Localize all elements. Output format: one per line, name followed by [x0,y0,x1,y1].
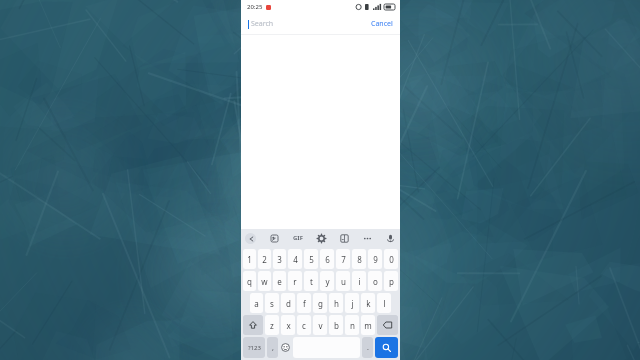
button[interactable]: 7 [336,249,350,269]
staticText: r [293,276,297,287]
button[interactable]: d [281,293,295,313]
staticText: 4 [293,254,298,265]
button[interactable]: f [297,293,311,313]
staticText: w [261,276,268,287]
button[interactable]: 9 [368,249,382,269]
button[interactable]: a [250,293,263,313]
button[interactable]: u [336,271,350,291]
staticText: d [286,298,291,309]
staticText: . [367,343,369,353]
staticText: v [318,320,323,331]
staticText: 1 [247,254,252,265]
staticText: h [334,298,339,309]
button[interactable]: v [313,315,327,335]
staticText: n [350,320,355,331]
button[interactable]: Emoji [280,337,291,358]
button[interactable]: o [368,271,382,291]
staticText: b [334,320,339,331]
staticText: 8 [357,254,362,265]
button[interactable]: q [243,271,256,291]
button[interactable]: 4 [288,249,302,269]
button[interactable]: Translate [339,233,350,244]
staticText: 7 [341,254,346,265]
button[interactable]: y [320,271,334,291]
staticText: 5 [309,254,314,265]
button[interactable]: j [345,293,359,313]
button[interactable]: s [265,293,279,313]
staticText: q [247,276,252,287]
button[interactable]: 2 [258,249,271,269]
staticText: f [303,298,306,309]
staticText: j [351,298,354,309]
button[interactable]: p [384,271,398,291]
staticText: u [341,276,346,287]
staticText: 20:25 [247,3,263,11]
staticText: 3 [277,254,282,265]
button[interactable]: . [362,337,373,358]
staticText: 0 [389,254,394,265]
button[interactable]: k [361,293,375,313]
button[interactable]: GIF [292,233,304,243]
button[interactable]: 3 [273,249,286,269]
staticText: o [373,276,378,287]
staticText: 9 [373,254,378,265]
button[interactable]: 5 [304,249,318,269]
staticText: l [383,298,386,309]
staticText: z [270,320,274,331]
staticText: c [302,320,306,331]
button[interactable]: m [361,315,375,335]
button[interactable]: z [265,315,279,335]
button[interactable]: 8 [352,249,366,269]
button[interactable]: 1 [243,249,256,269]
button[interactable]: g [313,293,327,313]
button[interactable]: More [362,233,373,244]
staticText: 6 [325,254,330,265]
staticText: m [364,320,372,331]
staticText: x [286,320,291,331]
button[interactable]: Sticker [269,233,280,244]
staticText: Cancel [371,19,393,29]
button[interactable]: Shift [243,315,263,335]
staticText: p [389,276,394,287]
button[interactable]: Back [245,233,256,244]
button[interactable]: l [377,293,391,313]
staticText: s [270,298,274,309]
staticText: t [310,276,313,287]
button[interactable]: e [273,271,286,291]
button[interactable]: b [329,315,343,335]
button[interactable]: , [267,337,278,358]
staticText: ?123 [248,344,261,352]
staticText: i [358,276,361,287]
staticText: y [325,276,330,287]
button[interactable]: 6 [320,249,334,269]
staticText: e [277,276,282,287]
button[interactable]: 0 [384,249,398,269]
button[interactable]: h [329,293,343,313]
staticText: a [254,298,259,309]
button[interactable]: i [352,271,366,291]
button[interactable]: Backspace [377,315,398,335]
staticText: 2 [262,254,267,265]
button[interactable]: r [288,271,302,291]
button[interactable]: t [304,271,318,291]
button[interactable]: Voice input [385,233,396,244]
button[interactable]: c [297,315,311,335]
staticText: k [366,298,371,309]
button[interactable]: Search [375,337,398,358]
button[interactable]: w [258,271,271,291]
staticText: Search [251,19,274,29]
button[interactable]: x [281,315,295,335]
staticText: GIF [293,234,303,242]
staticText: , [272,343,274,353]
button[interactable]: Search [248,14,371,34]
button[interactable]: ?123 [243,337,265,358]
button[interactable]: n [345,315,359,335]
button[interactable]: Settings [316,233,327,244]
staticText: g [318,298,323,309]
button[interactable]: Cancel [371,14,393,34]
